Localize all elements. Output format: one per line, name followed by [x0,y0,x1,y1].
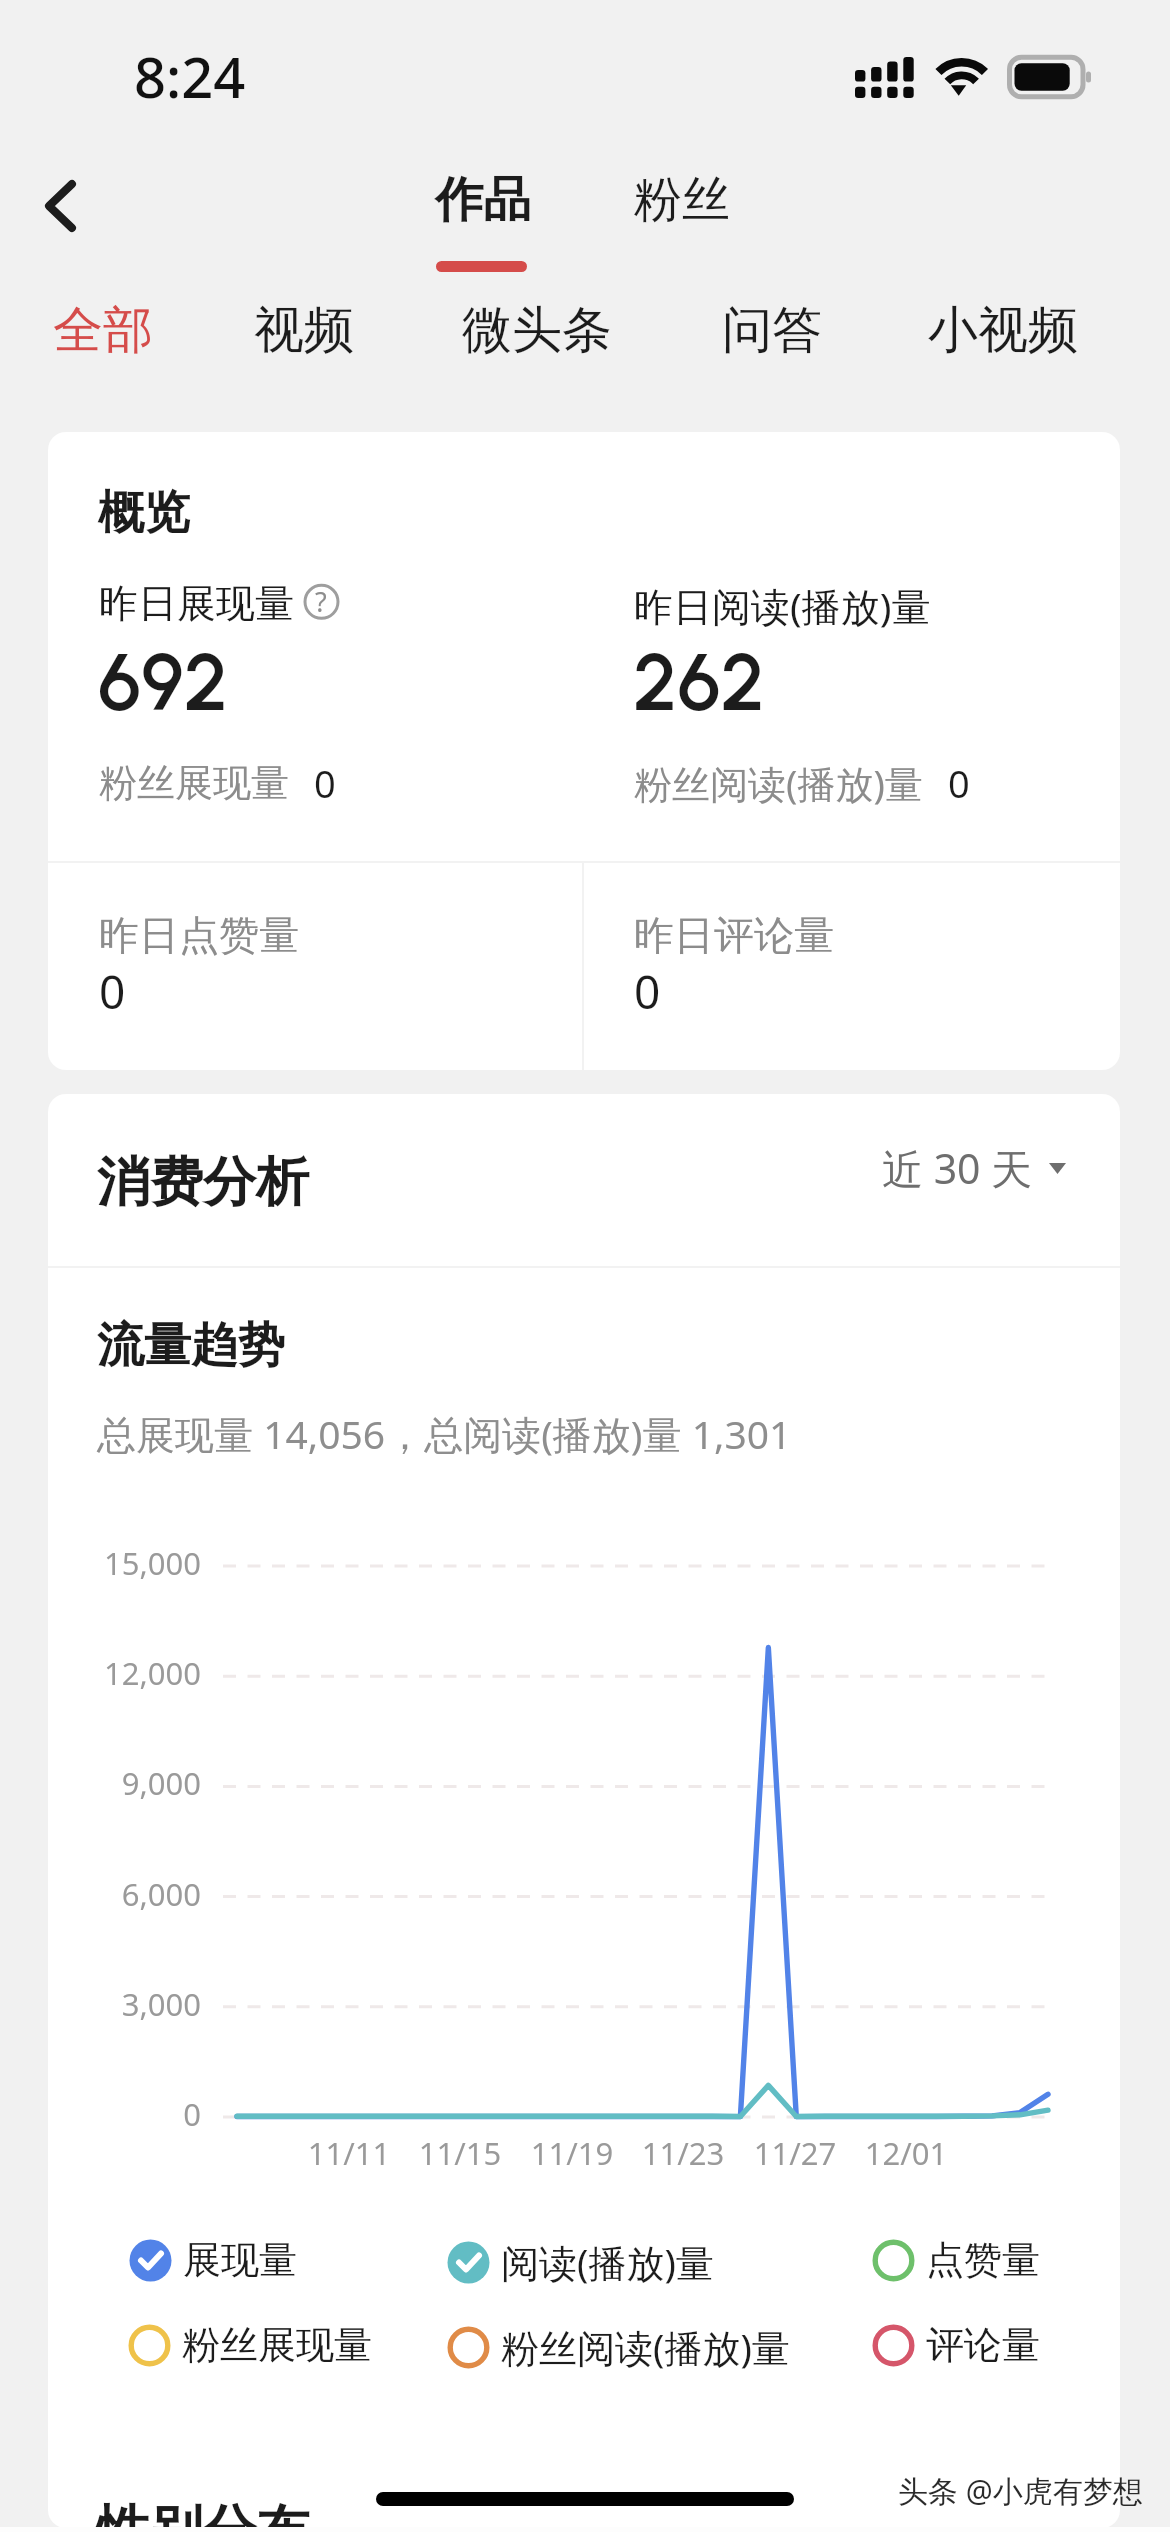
staticText: ? [315,583,327,620]
staticText: 0 [634,960,661,1023]
button[interactable]: 视频 [240,287,368,374]
staticText: 作品 [435,170,531,230]
staticText: 问答 [722,299,822,362]
staticText: 性别分布 [97,2497,309,2528]
staticText: 昨日评论量 [634,910,834,960]
staticText: 流量趋势 [97,1316,285,1375]
staticText: 12/01 [851,2132,961,2174]
staticText: 15,000 [48,1542,201,1584]
staticText: 11/27 [740,2132,850,2174]
button[interactable]: 全部 [39,287,167,374]
staticText: 粉丝展现量 [182,2321,372,2369]
staticText: 0 [99,960,126,1023]
staticText: 6,000 [48,1873,201,1915]
staticText: 微头条 [462,299,612,362]
staticText: 评论量 [926,2321,1040,2369]
staticText: 11/23 [628,2132,738,2174]
staticText: 视频 [254,299,354,362]
staticText: 展现量 [183,2236,297,2284]
staticText: 粉丝展现量 [99,759,289,807]
staticText: 11/11 [294,2132,404,2174]
staticText: 0 [48,2093,201,2135]
staticText: 阅读(播放)量 [501,2236,714,2288]
button[interactable]: 微头条 [448,287,626,374]
staticText: 粉丝阅读(播放)量 [501,2321,790,2373]
staticText: 9,000 [48,1762,201,1804]
button[interactable]: 粉丝 [614,160,750,240]
button[interactable]: Back [22,163,108,249]
staticText: 昨日点赞量 [99,910,299,960]
staticText: 692 [98,635,229,730]
staticText: 近 30 天 [882,1140,1033,1196]
staticText: 粉丝阅读(播放)量 [634,757,923,809]
button[interactable]: 小视频 [914,287,1092,374]
staticText: 12,000 [48,1652,201,1694]
staticText: 全部 [53,299,153,362]
staticText: 小视频 [928,299,1078,362]
button[interactable]: 粉丝展现量 [128,2321,372,2369]
button[interactable]: 作品 [415,160,551,240]
staticText: 昨日展现量 [99,579,294,628]
button[interactable]: 粉丝阅读(播放)量 [447,2321,790,2373]
button[interactable]: 近 30 天 [868,1130,1080,1206]
staticText: 点赞量 [926,2236,1040,2284]
button[interactable]: 评论量 [872,2321,1040,2369]
button[interactable]: 点赞量 [872,2236,1040,2284]
button[interactable]: 展现量 [129,2236,297,2284]
staticText: 11/19 [517,2132,627,2174]
staticText: 概览 [98,484,190,542]
staticText: 昨日阅读(播放)量 [634,579,931,632]
button[interactable]: 问答 [708,287,836,374]
staticText: 头条 @小虎有梦想 [898,2470,1143,2511]
staticText: 粉丝 [634,170,730,230]
staticText: 262 [633,635,765,730]
staticText: 11/15 [405,2132,515,2174]
staticText: 3,000 [48,1983,201,2025]
staticText: 8:24 [134,38,246,114]
staticText: 0 [948,757,970,809]
button[interactable]: Help [301,582,339,620]
staticText: 消费分析 [97,1149,309,1216]
staticText: 0 [314,757,336,809]
staticText: 总展现量 14,056，总阅读(播放)量 1,301 [97,1407,792,1460]
button[interactable]: 阅读(播放)量 [447,2236,714,2288]
